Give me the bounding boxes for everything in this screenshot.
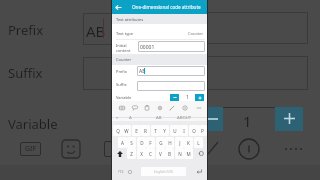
button[interactable]: Y [160,125,169,136]
button[interactable]: Z [127,148,136,159]
button[interactable]: P [198,125,207,136]
staticText: D [140,140,144,146]
staticText: 1 [186,94,189,101]
button[interactable]: Keyboard tool [196,105,202,111]
staticText: I [183,128,185,134]
staticText: H [168,140,172,146]
staticText: Suffix [8,64,43,82]
staticText: Initial content [116,43,131,53]
button[interactable]: E [132,125,141,136]
button[interactable] [137,81,205,91]
staticText: B [168,151,171,157]
button[interactable]: M [184,148,193,159]
staticText: A [121,140,124,146]
staticText: Suffix [116,82,127,87]
button[interactable]: O [189,125,198,136]
staticText: S [130,140,133,146]
button[interactable]: R [141,125,150,136]
staticText: Text attributes [116,17,144,22]
button[interactable]: 00001 [138,41,205,52]
staticText: ?12 [118,169,124,174]
staticText: C [149,151,152,157]
staticText: Q [116,128,120,134]
button[interactable]: AB [137,66,205,76]
staticText: GIF [25,144,37,154]
button[interactable]: Keyboard tool [144,105,150,111]
button[interactable]: Q [113,125,122,136]
staticText: AB [86,21,106,41]
button[interactable]: X [137,148,146,159]
staticText: G [159,140,163,146]
staticText: L [197,140,200,146]
staticText: K [187,140,190,146]
staticText: Prefix [116,69,127,74]
staticText: ABOUT [177,115,192,121]
button[interactable]: English (US) [141,167,186,176]
button[interactable]: Backspace [195,148,207,159]
button[interactable]: F [146,137,155,148]
staticText: Counter [116,57,132,62]
button[interactable]: S [127,137,136,148]
button[interactable]: H [165,137,174,148]
staticText: Counter [188,31,204,36]
staticText: Y [163,128,166,134]
staticText: O [192,128,196,134]
button[interactable]: Symbols [116,167,126,176]
button[interactable]: L [194,137,203,148]
button[interactable]: Decrease [170,94,179,101]
staticText: 00001 [140,44,155,51]
staticText: M [186,151,191,157]
staticText: AB [139,68,146,75]
button[interactable]: Emoji [125,167,134,176]
button[interactable]: Keyboard tool [182,105,188,111]
button[interactable]: Shift [113,148,126,159]
staticText: P [201,128,204,134]
button[interactable]: Increase [195,94,204,101]
button[interactable]: Enter [193,167,204,176]
button[interactable]: B [165,148,174,159]
staticText: J [179,140,181,146]
staticText: Variable [116,95,132,100]
staticText: 1 [243,111,252,131]
button[interactable]: Keyboard tool [169,105,175,111]
staticText: T [154,128,157,134]
staticText: X [140,151,143,157]
staticText: V [159,151,162,157]
button[interactable]: A [118,137,127,148]
button[interactable]: Keyboard tool [132,105,138,111]
staticText: Z [130,151,133,157]
staticText: × [116,115,119,121]
button[interactable]: W [122,125,131,136]
button[interactable]: D [137,137,146,148]
staticText: W [124,128,129,134]
button[interactable]: Keyboard tool [119,105,125,111]
button[interactable]: T [151,125,160,136]
button[interactable]: Back [112,0,207,14]
staticText: Variable [8,115,58,133]
staticText: AB [156,115,162,121]
staticText: Text type [116,31,133,36]
staticText: One-dimensional code attribute [132,4,201,10]
button[interactable]: V [156,148,165,159]
button[interactable]: C [146,148,155,159]
button[interactable]: Keyboard tool [157,105,163,111]
staticText: N [178,151,182,157]
staticText: R [144,128,147,134]
staticText: U [173,128,177,134]
staticText: English (US) [154,169,173,174]
staticText: E [135,128,138,134]
button[interactable]: N [175,148,184,159]
button[interactable]: K [184,137,193,148]
staticText: A [129,115,132,121]
staticText: F [149,140,152,146]
button[interactable]: I [179,125,188,136]
staticText: Prefix [8,21,44,39]
button[interactable]: Back [114,3,123,12]
button[interactable]: J [175,137,184,148]
button[interactable]: U [170,125,179,136]
button[interactable]: G [156,137,165,148]
